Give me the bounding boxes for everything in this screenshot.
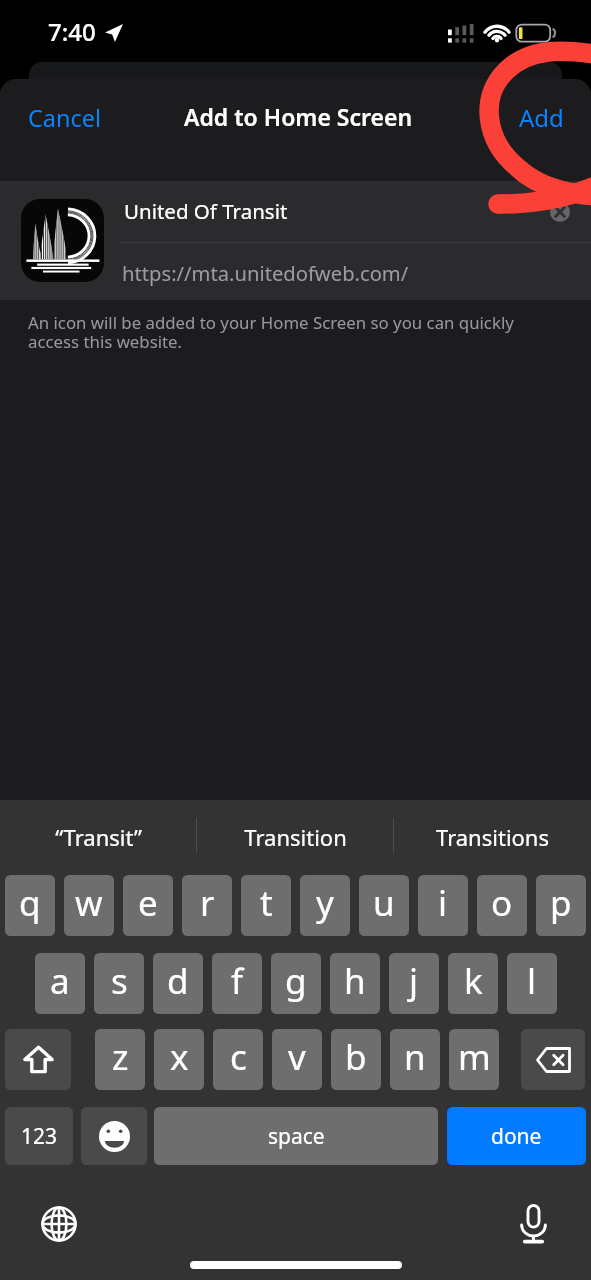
- button[interactable]: Transitions: [394, 800, 591, 874]
- button[interactable]: x: [154, 1029, 204, 1090]
- button[interactable]: v: [272, 1029, 322, 1090]
- button[interactable]: Transition: [197, 800, 394, 874]
- staticText: w: [75, 879, 103, 927]
- button[interactable]: 123: [5, 1107, 73, 1165]
- staticText: An icon will be added to your Home Scree…: [28, 311, 514, 353]
- staticText: g: [285, 957, 307, 1005]
- button[interactable]: b: [331, 1029, 381, 1090]
- button[interactable]: o: [477, 875, 527, 936]
- staticText: f: [231, 957, 244, 1005]
- button[interactable]: Clear text: [550, 202, 570, 222]
- button[interactable]: c: [213, 1029, 263, 1090]
- staticText: u: [373, 879, 395, 927]
- button[interactable]: e: [123, 875, 173, 936]
- button[interactable]: q: [5, 875, 55, 936]
- staticText: Cancel: [28, 102, 102, 134]
- staticText: k: [464, 957, 483, 1005]
- staticText: d: [167, 957, 189, 1005]
- staticText: t: [260, 879, 273, 927]
- button[interactable]: h: [330, 953, 380, 1014]
- staticText: space: [268, 1122, 325, 1151]
- button[interactable]: k: [448, 953, 498, 1014]
- button[interactable]: Backspace: [521, 1029, 585, 1090]
- button[interactable]: y: [300, 875, 350, 936]
- staticText: v: [288, 1033, 306, 1081]
- button[interactable]: a: [35, 953, 85, 1014]
- button[interactable]: m: [449, 1029, 499, 1090]
- staticText: Add: [519, 101, 564, 134]
- staticText: Add to Home Screen: [184, 101, 413, 132]
- staticText: Transitions: [436, 822, 549, 852]
- staticText: r: [200, 879, 215, 927]
- button[interactable]: j: [389, 953, 439, 1014]
- staticText: m: [458, 1033, 491, 1081]
- staticText: done: [491, 1122, 542, 1151]
- staticText: o: [491, 879, 513, 927]
- staticText: l: [527, 957, 537, 1005]
- button[interactable]: t: [241, 875, 291, 936]
- staticText: p: [550, 879, 572, 927]
- staticText: h: [344, 957, 366, 1005]
- button[interactable]: r: [182, 875, 232, 936]
- staticText: n: [404, 1033, 426, 1081]
- staticText: i: [438, 879, 448, 927]
- staticText: 123: [21, 1122, 58, 1151]
- button[interactable]: Dictation: [510, 1201, 556, 1247]
- button[interactable]: s: [94, 953, 144, 1014]
- button[interactable]: “Transit”: [0, 800, 197, 874]
- button[interactable]: g: [271, 953, 321, 1014]
- button[interactable]: Change keyboard: [36, 1201, 82, 1247]
- staticText: q: [19, 879, 41, 927]
- staticText: x: [170, 1033, 189, 1081]
- staticText: c: [230, 1033, 247, 1081]
- button[interactable]: done: [447, 1107, 586, 1165]
- staticText: z: [112, 1033, 129, 1081]
- staticText: b: [345, 1033, 367, 1081]
- staticText: “Transit”: [55, 822, 142, 852]
- button[interactable]: p: [536, 875, 586, 936]
- staticText: 7:40: [48, 15, 96, 48]
- staticText: Transition: [244, 822, 347, 852]
- button[interactable]: Add: [503, 91, 580, 144]
- staticText: a: [50, 957, 70, 1005]
- staticText: s: [111, 957, 128, 1005]
- button[interactable]: l: [507, 953, 557, 1014]
- staticText: United Of Transit: [124, 197, 288, 225]
- button[interactable]: d: [153, 953, 203, 1014]
- staticText: e: [138, 879, 158, 927]
- button[interactable]: i: [418, 875, 468, 936]
- button[interactable]: u: [359, 875, 409, 936]
- button[interactable]: Cancel: [12, 92, 118, 144]
- button[interactable]: z: [95, 1029, 145, 1090]
- button[interactable]: n: [390, 1029, 440, 1090]
- button[interactable]: space: [154, 1107, 438, 1165]
- button[interactable]: f: [212, 953, 262, 1014]
- staticText: https://mta.unitedofweb.com/: [122, 259, 409, 287]
- button[interactable]: Emoji keyboard: [81, 1107, 147, 1165]
- button[interactable]: Shift: [5, 1029, 71, 1090]
- button[interactable]: w: [64, 875, 114, 936]
- staticText: j: [409, 957, 419, 1005]
- staticText: y: [316, 879, 334, 927]
